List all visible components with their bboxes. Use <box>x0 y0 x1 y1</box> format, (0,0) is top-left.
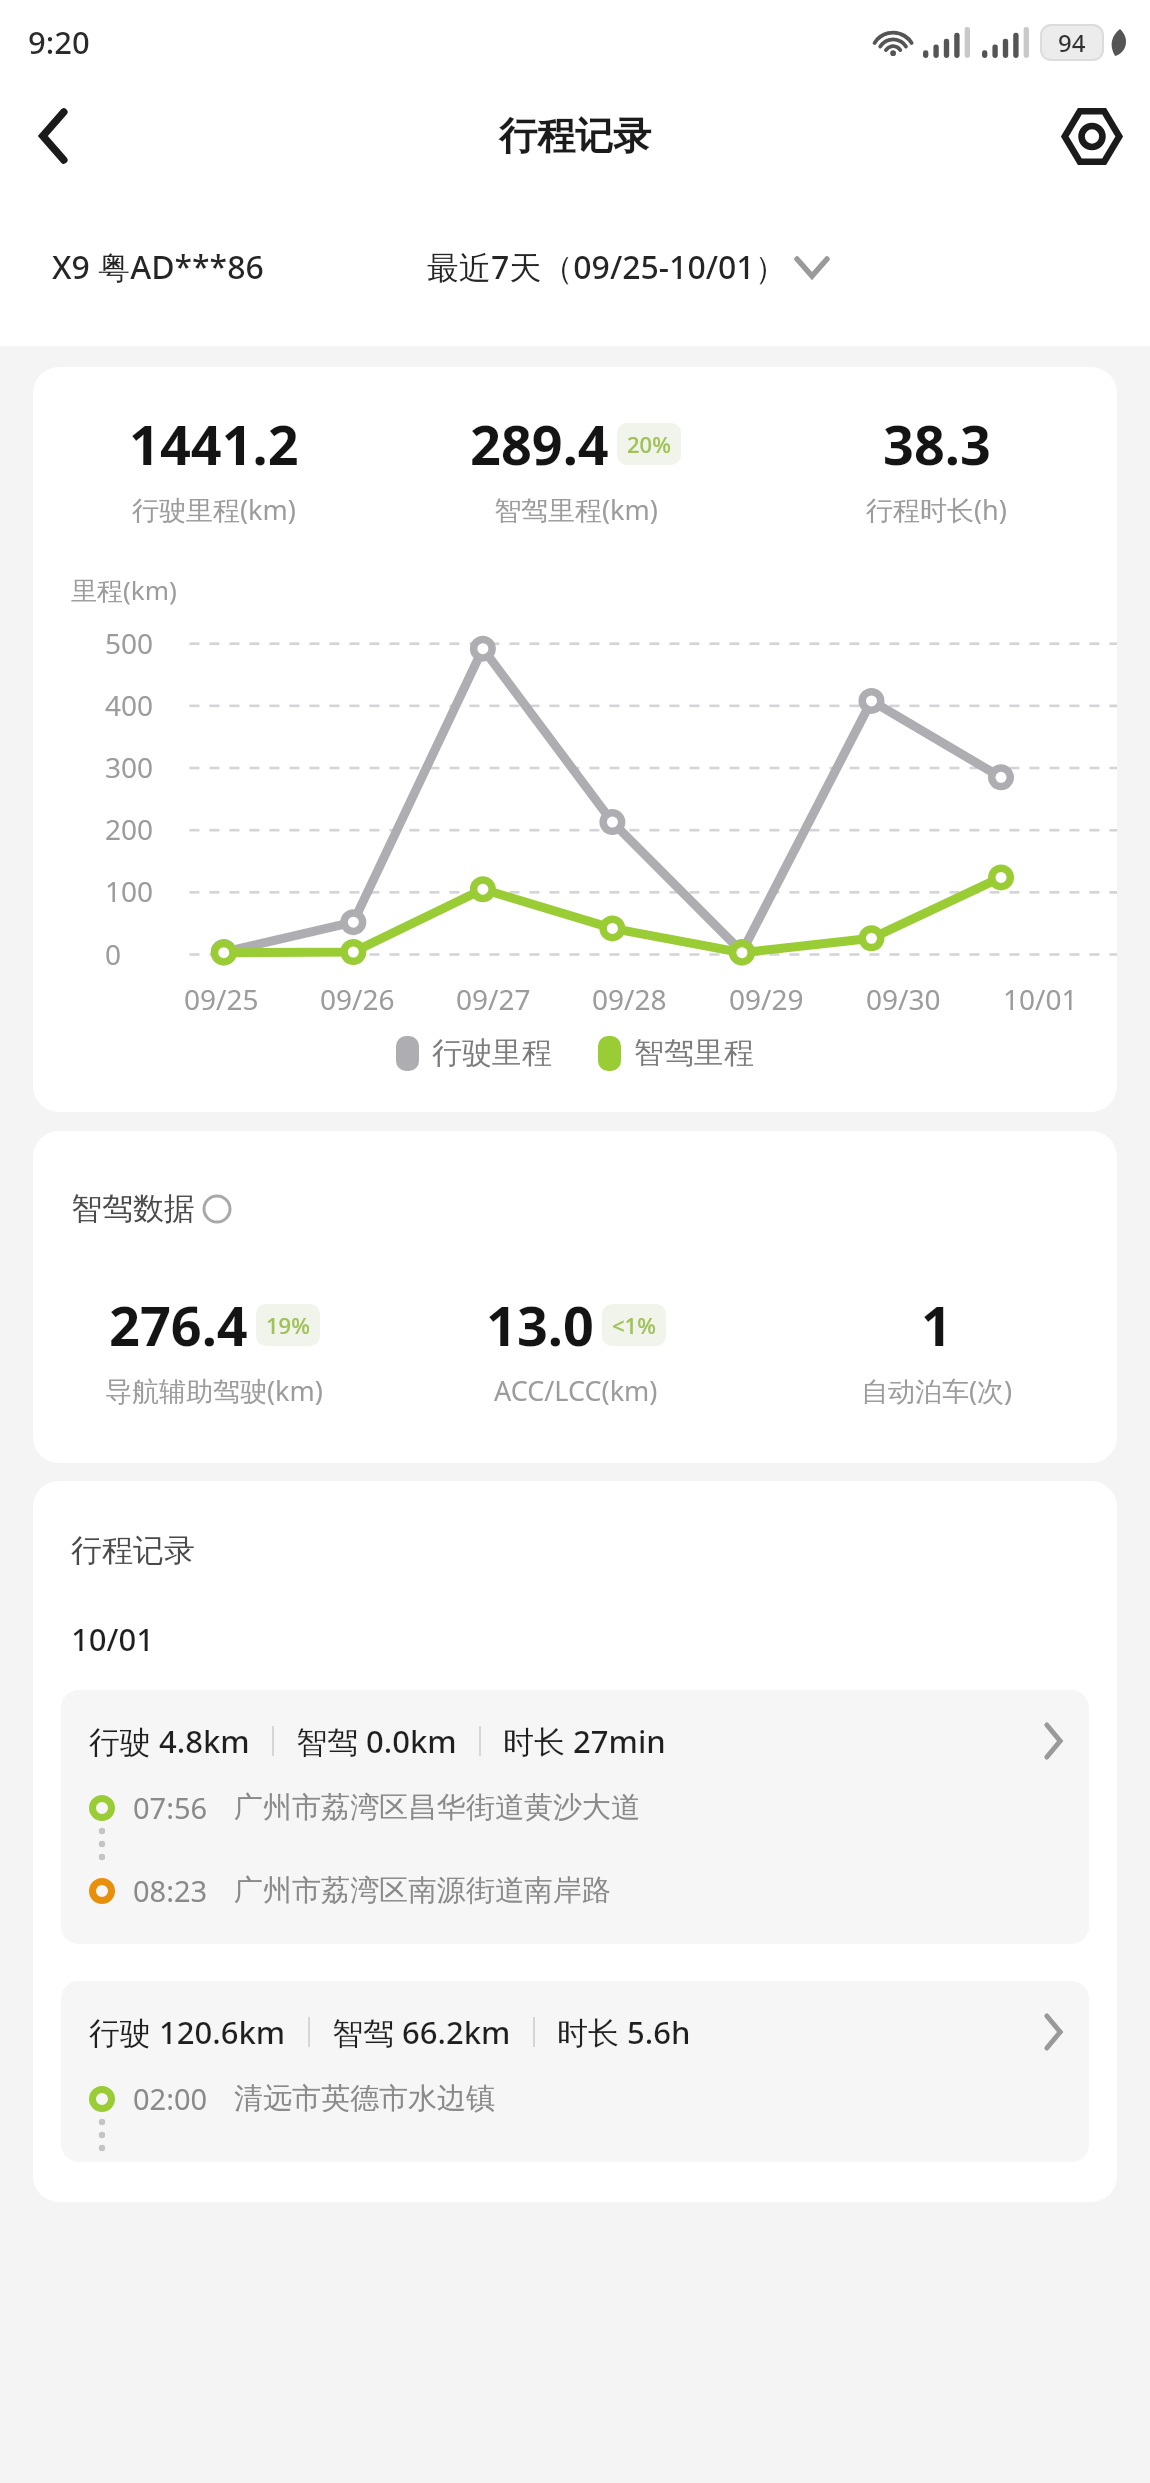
staticText: 400 <box>105 686 154 724</box>
staticText: 里程(km) <box>71 572 177 608</box>
staticText: 最近7天（09/25-10/01） <box>427 245 787 289</box>
staticText: 时长 5.6h <box>557 2011 691 2053</box>
staticText: 10/01 <box>1003 980 1078 1018</box>
staticText: 行驶里程 <box>432 1034 552 1072</box>
staticText: 1441.2 <box>129 407 299 481</box>
button[interactable]: 行驶 120.6km <box>61 1981 1089 2162</box>
staticText: 行驶里程(km) <box>132 491 296 528</box>
staticText: X9 粤AD***86 <box>52 245 264 289</box>
button[interactable]: 最近7天（09/25-10/01） <box>421 239 833 295</box>
staticText: 行程记录 <box>499 112 651 160</box>
staticText: 10/01 <box>71 1618 154 1660</box>
staticText: 200 <box>105 810 154 848</box>
staticText: 09/25 <box>184 980 259 1018</box>
staticText: 300 <box>105 748 154 786</box>
button[interactable]: 智驾数据 <box>71 1189 232 1228</box>
staticText: 自动泊车(次) <box>861 1372 1013 1409</box>
button[interactable]: 行驶里程 <box>392 1030 556 1076</box>
staticText: <1% <box>612 1310 656 1340</box>
staticText: 09/27 <box>456 980 531 1018</box>
staticText: ACC/LCC(km) <box>494 1372 658 1409</box>
staticText: 广州市荔湾区南源街道南岸路 <box>234 1872 611 1909</box>
button[interactable]: 智驾里程 <box>594 1030 758 1076</box>
staticText: 行驶 120.6km <box>89 2011 286 2053</box>
staticText: 08:23 <box>133 1871 208 1910</box>
staticText: 智驾 66.2km <box>332 2011 511 2053</box>
staticText: 07:56 <box>133 1788 208 1827</box>
staticText: 19% <box>266 1310 310 1340</box>
staticText: 100 <box>105 872 154 910</box>
staticText: 289.4 <box>470 407 609 481</box>
staticText: 智驾里程 <box>634 1034 754 1072</box>
staticText: 09/30 <box>866 980 941 1018</box>
staticText: 20% <box>627 429 671 459</box>
staticText: 09/26 <box>320 980 395 1018</box>
staticText: 行驶 4.8km <box>89 1720 250 1762</box>
button[interactable]: Settings <box>1052 96 1132 176</box>
staticText: 行程时长(h) <box>866 491 1007 528</box>
staticText: 276.4 <box>109 1288 248 1362</box>
button[interactable]: Back <box>16 98 92 174</box>
staticText: 智驾数据 <box>71 1189 195 1228</box>
staticText: 500 <box>105 624 154 662</box>
staticText: 0 <box>105 935 122 973</box>
staticText: 9:20 <box>28 21 90 63</box>
staticText: 时长 27min <box>503 1720 666 1762</box>
staticText: 智驾里程(km) <box>494 491 658 528</box>
staticText: 行程记录 <box>71 1531 195 1570</box>
button[interactable]: 行驶 4.8km <box>61 1690 1089 1944</box>
staticText: 清远市英德市水边镇 <box>234 2080 495 2117</box>
staticText: 38.3 <box>883 407 991 481</box>
staticText: 94 <box>1058 26 1086 59</box>
staticText: 09/29 <box>729 980 804 1018</box>
staticText: 1 <box>921 1288 952 1362</box>
staticText: 智驾 0.0km <box>296 1720 457 1762</box>
staticText: 广州市荔湾区昌华街道黄沙大道 <box>234 1789 640 1826</box>
staticText: 导航辅助驾驶(km) <box>105 1372 323 1409</box>
staticText: 09/28 <box>592 980 667 1018</box>
staticText: 02:00 <box>133 2079 208 2118</box>
staticText: 13.0 <box>486 1288 594 1362</box>
